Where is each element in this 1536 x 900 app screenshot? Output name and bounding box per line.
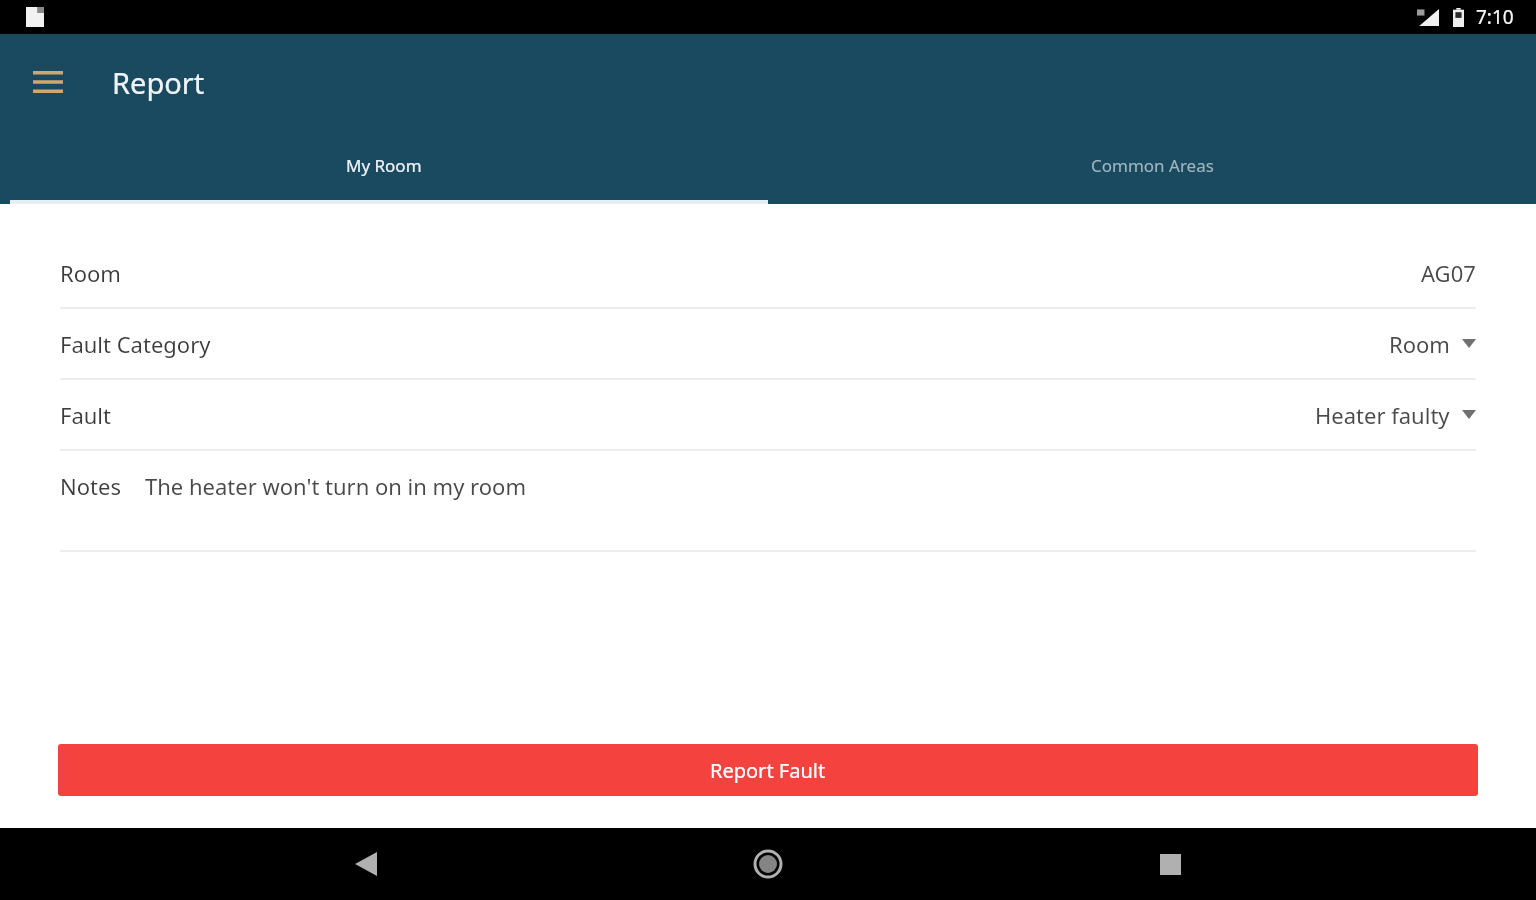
button[interactable]: Fault (0, 380, 1536, 449)
button[interactable]: Open navigation menu (20, 54, 76, 110)
button[interactable]: Report Fault (58, 744, 1478, 796)
staticText: Heater faulty (1315, 400, 1450, 430)
staticText: Room (60, 258, 121, 288)
button[interactable]: Home (732, 828, 804, 900)
button[interactable]: My Room (0, 130, 768, 200)
staticText: My Room (346, 154, 422, 177)
staticText: Report (112, 63, 205, 102)
staticText: AG07 (1421, 258, 1476, 288)
staticText: 7:10 (1476, 4, 1514, 30)
button[interactable]: Fault Category (0, 309, 1536, 378)
button[interactable]: Back (330, 828, 402, 900)
staticText: Fault Category (60, 329, 211, 359)
staticText: Fault (60, 400, 111, 430)
button[interactable]: Recent apps (1134, 828, 1206, 900)
staticText: Report Fault (710, 757, 826, 784)
button[interactable]: Room (0, 238, 1536, 307)
button[interactable]: Common Areas (768, 130, 1536, 200)
staticText: Common Areas (1091, 154, 1214, 177)
staticText: Notes (60, 471, 121, 501)
staticText: Room (1389, 329, 1450, 359)
staticText: The heater won't turn on in my room (145, 471, 526, 501)
button[interactable]: Notes (0, 451, 1536, 520)
